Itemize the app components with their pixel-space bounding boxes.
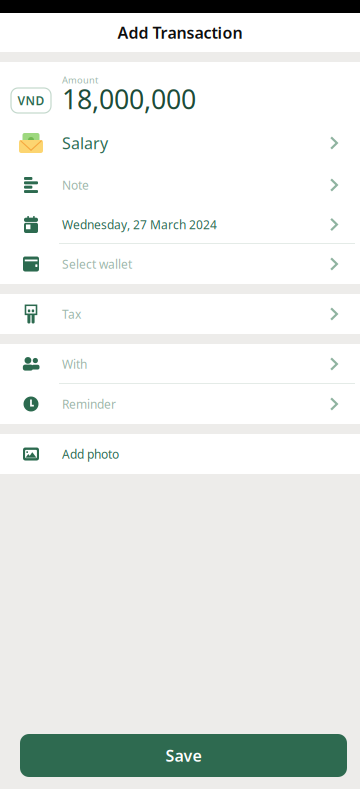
staticText: With <box>62 356 87 372</box>
staticText: Note <box>62 177 89 193</box>
staticText: VND <box>17 92 44 108</box>
staticText: Salary <box>62 132 108 154</box>
staticText: Tax <box>62 306 81 322</box>
button[interactable]: With <box>0 344 360 384</box>
staticText: 18,000,000 <box>62 81 196 117</box>
staticText: Select wallet <box>62 256 132 272</box>
button[interactable]: Reminder <box>0 384 360 424</box>
staticText: Reminder <box>62 396 116 412</box>
button[interactable]: Select wallet <box>0 244 360 284</box>
button[interactable]: VND <box>11 88 51 113</box>
staticText: Add Transaction <box>117 22 242 43</box>
staticText: Add photo <box>62 446 119 462</box>
button[interactable]: Salary <box>0 121 360 165</box>
staticText: Wednesday, 27 March 2024 <box>62 216 217 232</box>
staticText: Save <box>165 745 201 766</box>
button[interactable]: Tax <box>0 294 360 334</box>
button[interactable]: Add photo <box>0 434 360 474</box>
button[interactable]: Note <box>0 165 360 205</box>
staticText: Amount <box>62 74 98 86</box>
button[interactable]: Save <box>20 734 347 777</box>
button[interactable]: Wednesday, 27 March 2024 <box>0 205 360 244</box>
